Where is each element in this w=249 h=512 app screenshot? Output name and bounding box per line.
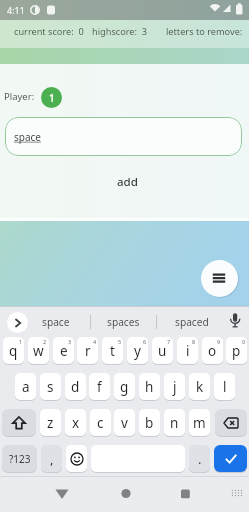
button[interactable]: ?123 <box>2 445 37 472</box>
staticText: l <box>223 378 227 396</box>
button[interactable]: spaced <box>171 313 213 331</box>
button[interactable] <box>54 487 70 501</box>
button[interactable] <box>215 409 247 436</box>
staticText: k <box>196 378 204 396</box>
button[interactable]: i <box>177 337 198 364</box>
button[interactable] <box>214 445 247 472</box>
staticText: spaces <box>107 315 140 329</box>
button[interactable] <box>201 260 238 297</box>
staticText: ?123 <box>9 452 31 466</box>
staticText: g <box>120 378 129 396</box>
button[interactable]: g <box>114 373 135 400</box>
button[interactable]: t <box>102 337 123 364</box>
staticText: e <box>60 342 68 360</box>
button[interactable]: d <box>65 373 86 400</box>
staticText: r <box>85 342 91 360</box>
button[interactable]: j <box>164 373 185 400</box>
button[interactable]: m <box>189 409 210 436</box>
button[interactable]: space <box>36 313 76 331</box>
staticText: u <box>158 342 167 360</box>
button[interactable] <box>2 409 36 436</box>
staticText: p <box>232 342 241 360</box>
staticText: current score: 0 <box>14 25 84 38</box>
button[interactable]: add <box>102 170 152 194</box>
staticText: 4 <box>93 338 97 345</box>
button[interactable]: y <box>127 337 148 364</box>
button[interactable]: e <box>53 337 74 364</box>
staticText: f <box>97 378 102 396</box>
staticText: a <box>22 378 30 396</box>
staticText: spaced <box>175 315 209 329</box>
button[interactable]: k <box>189 373 210 400</box>
staticText: space <box>14 130 41 144</box>
button[interactable]: c <box>90 409 111 436</box>
staticText: Player: <box>4 90 35 103</box>
button[interactable]: n <box>164 409 185 436</box>
button[interactable] <box>228 311 242 331</box>
button[interactable] <box>230 488 244 498</box>
staticText: letters to remove: <box>166 25 243 38</box>
staticText: b <box>145 414 154 432</box>
button[interactable]: o <box>202 337 223 364</box>
button[interactable]: z <box>40 409 61 436</box>
staticText: s <box>47 378 54 396</box>
staticText: 3 <box>68 338 72 345</box>
staticText: j <box>173 378 177 396</box>
staticText: t <box>110 342 115 360</box>
staticText: 1 <box>19 338 23 345</box>
button[interactable]: x <box>65 409 86 436</box>
button[interactable]: . <box>189 445 210 472</box>
staticText: v <box>121 414 128 432</box>
staticText: q <box>9 342 18 360</box>
staticText: o <box>208 342 217 360</box>
staticText: d <box>71 378 80 396</box>
button[interactable] <box>119 486 133 500</box>
staticText: z <box>47 414 54 432</box>
button[interactable]: w <box>28 337 49 364</box>
staticText: 1 <box>49 91 55 105</box>
button[interactable] <box>178 486 192 500</box>
button[interactable]: spaces <box>103 313 143 331</box>
staticText: 5 <box>118 338 122 345</box>
button[interactable] <box>66 445 87 472</box>
button[interactable]: b <box>139 409 160 436</box>
staticText: i <box>186 342 190 360</box>
staticText: m <box>193 414 206 432</box>
staticText: 6 <box>143 338 147 345</box>
staticText: 7 <box>167 338 171 345</box>
staticText: 2 <box>43 338 47 345</box>
staticText: c <box>97 414 104 432</box>
staticText: h <box>145 378 154 396</box>
staticText: y <box>134 342 141 360</box>
staticText: highscore: 3 <box>92 25 148 38</box>
button[interactable]: u <box>152 337 173 364</box>
button[interactable]: space <box>5 117 242 156</box>
button[interactable]: f <box>89 373 110 400</box>
staticText: x <box>72 414 80 432</box>
button[interactable]: q <box>3 337 24 364</box>
staticText: , <box>50 450 54 468</box>
staticText: space <box>42 315 70 329</box>
button[interactable] <box>7 312 28 333</box>
button[interactable]: p <box>226 337 247 364</box>
staticText: w <box>33 342 44 360</box>
staticText: 4:11 <box>7 4 25 16</box>
button[interactable]: , <box>41 445 62 472</box>
staticText: add <box>117 174 138 190</box>
button[interactable]: h <box>139 373 160 400</box>
button[interactable]: r <box>77 337 98 364</box>
staticText: 8 <box>192 338 196 345</box>
staticText: n <box>170 414 179 432</box>
button[interactable]: s <box>40 373 61 400</box>
button[interactable]: a <box>15 373 36 400</box>
staticText: 9 <box>217 338 221 345</box>
button[interactable]: v <box>114 409 135 436</box>
staticText: 0 <box>242 338 246 345</box>
staticText: . <box>198 450 202 468</box>
button[interactable]: l <box>214 373 235 400</box>
